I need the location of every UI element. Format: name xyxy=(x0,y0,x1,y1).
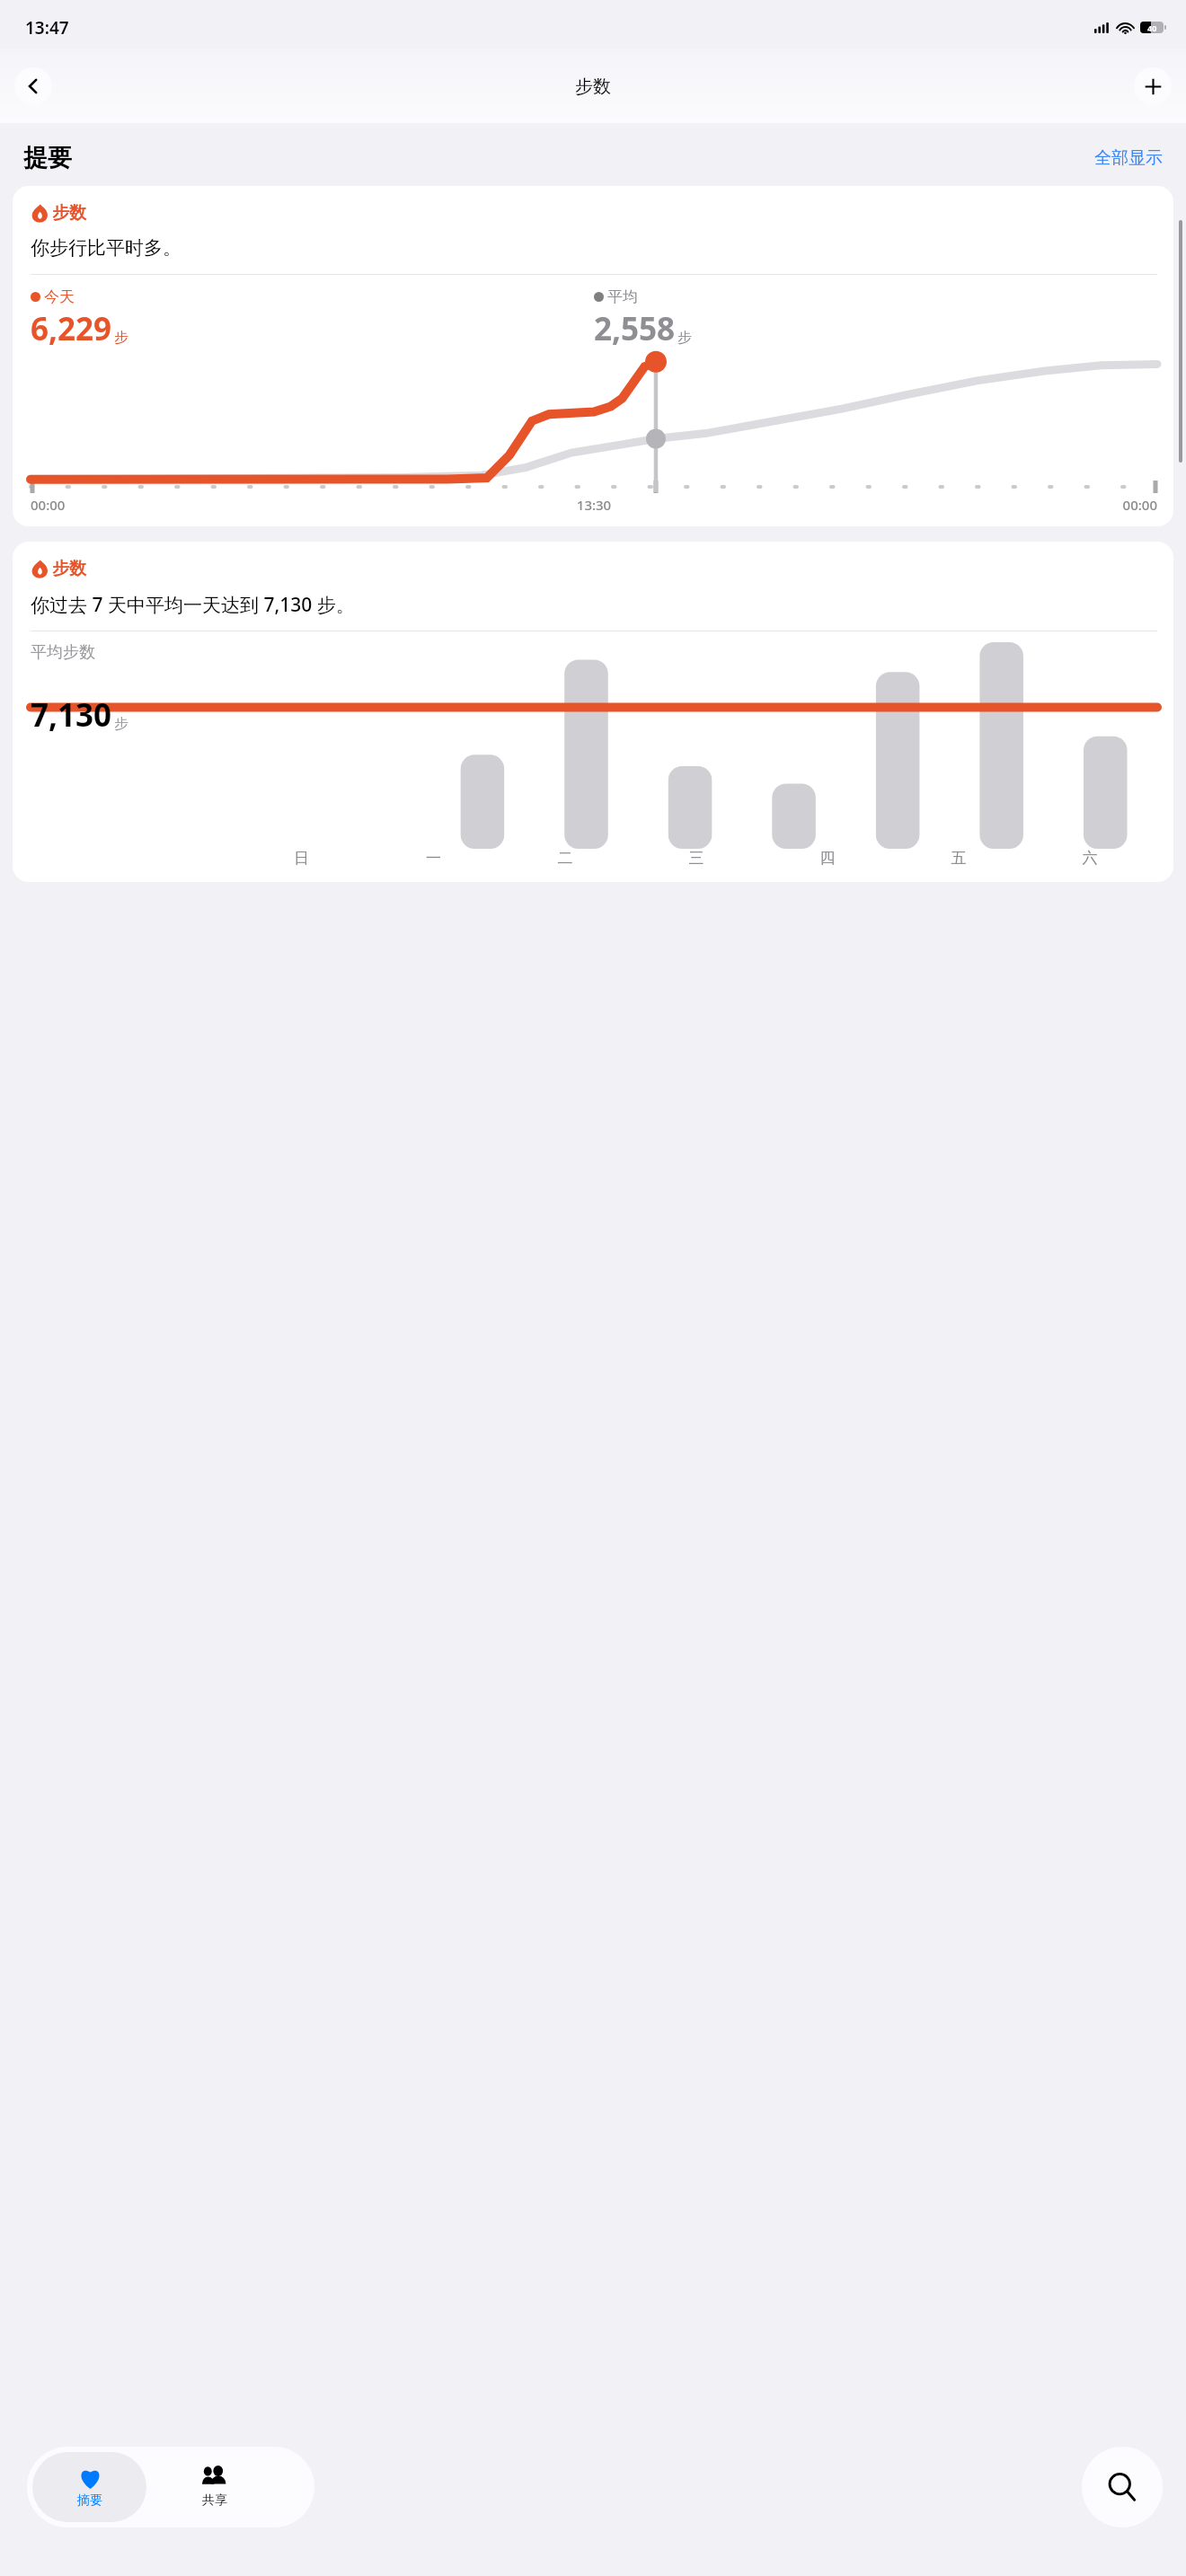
staticText: 步 xyxy=(114,715,128,733)
button[interactable]: 共享 xyxy=(152,2447,277,2527)
staticText: 13:30 xyxy=(406,496,782,514)
button[interactable]: Add xyxy=(1134,67,1172,105)
button[interactable]: 摘要 xyxy=(32,2452,146,2522)
staticText: 五 xyxy=(893,849,1024,868)
staticText: 40 xyxy=(1147,22,1157,33)
staticText: 步数 xyxy=(52,558,86,579)
button[interactable]: Back xyxy=(14,67,52,105)
staticText: 二 xyxy=(500,849,631,868)
staticText: 步 xyxy=(677,329,692,347)
staticText: 六 xyxy=(1024,849,1155,868)
staticText: 一 xyxy=(367,849,500,868)
staticText: 7,130 xyxy=(31,693,112,737)
staticText: 步数 xyxy=(52,202,86,224)
staticText: 2,558 xyxy=(594,307,676,350)
staticText: 你步行比平时多。 xyxy=(31,236,181,260)
staticText: 你过去 7 天中平均一天达到 7,130 步。 xyxy=(31,592,355,618)
staticText: 三 xyxy=(631,849,762,868)
button[interactable]: 步数 xyxy=(13,542,1173,882)
staticText: 13:47 xyxy=(25,16,69,40)
button[interactable]: Search xyxy=(1082,2447,1163,2527)
staticText: 提要 xyxy=(23,143,72,173)
staticText: 摘要 xyxy=(77,2492,102,2509)
button[interactable]: 步数 xyxy=(13,186,1173,526)
staticText: 今天 xyxy=(44,287,75,306)
staticText: 全部显示 xyxy=(1094,147,1163,169)
staticText: 步 xyxy=(114,329,128,347)
staticText: 00:00 xyxy=(31,496,406,514)
staticText: 平均 xyxy=(607,287,638,306)
staticText: 四 xyxy=(762,849,893,868)
staticText: 共享 xyxy=(202,2492,227,2509)
staticText: 00:00 xyxy=(782,496,1157,514)
staticText: 日 xyxy=(235,849,367,868)
staticText: 步数 xyxy=(575,75,611,98)
staticText: 平均步数 xyxy=(31,642,95,663)
button[interactable]: 全部显示 xyxy=(1094,147,1163,169)
staticText: 6,229 xyxy=(31,307,112,350)
